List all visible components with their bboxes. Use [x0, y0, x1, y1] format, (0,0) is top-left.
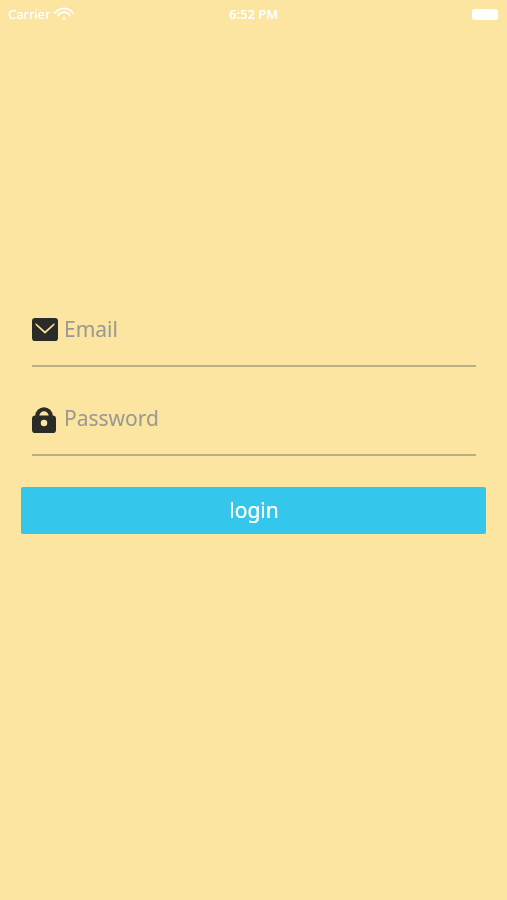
- staticText: Password: [64, 404, 159, 433]
- button[interactable]: Email: [32, 315, 476, 367]
- other: Email: [32, 318, 58, 341]
- button[interactable]: login: [21, 487, 486, 534]
- staticText: 6:52 PM: [229, 5, 279, 23]
- staticText: Carrier: [8, 5, 51, 23]
- other: Password: [32, 404, 56, 433]
- staticText: Email: [64, 315, 118, 344]
- staticText: login: [229, 496, 279, 525]
- button[interactable]: Password: [32, 404, 476, 456]
